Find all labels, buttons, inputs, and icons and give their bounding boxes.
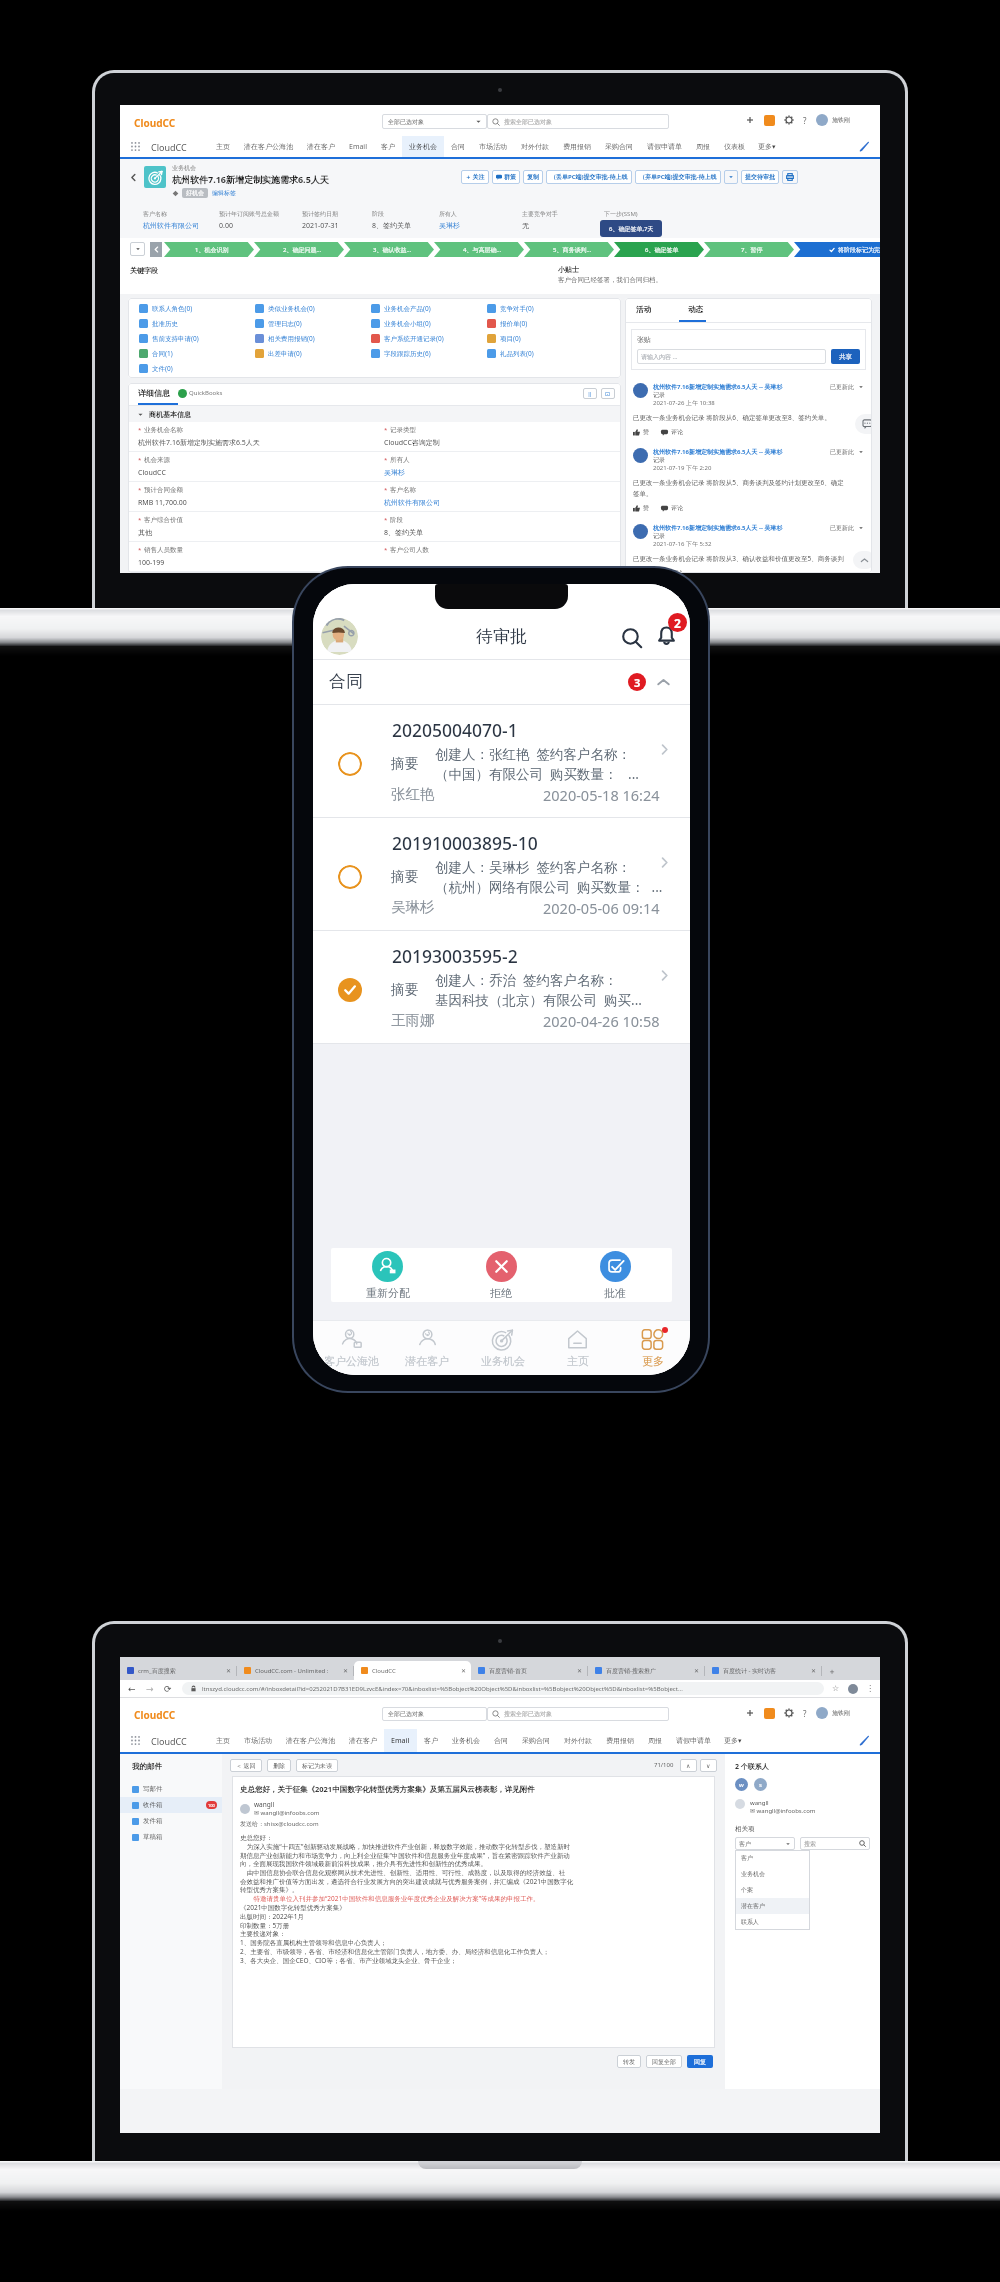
button[interactable]: 草稿箱 bbox=[120, 1829, 222, 1845]
button[interactable]: 费用报销 bbox=[599, 1729, 641, 1752]
button[interactable]: 对外付款 bbox=[557, 1729, 599, 1752]
button[interactable]: 活动 bbox=[633, 305, 654, 314]
button[interactable]: 潜在客户 bbox=[300, 136, 342, 157]
button[interactable]: 礼品列表(0) bbox=[487, 349, 534, 358]
button[interactable]: Search bbox=[616, 622, 648, 654]
button[interactable]: 收件箱 bbox=[120, 1797, 222, 1813]
button[interactable]: 请假申请单 bbox=[669, 1729, 718, 1752]
button[interactable]: 主页 bbox=[540, 1321, 615, 1375]
button[interactable]: 1、机会识别 bbox=[164, 242, 254, 257]
button[interactable]: 合同 bbox=[487, 1729, 515, 1752]
button[interactable]: CloudCC bbox=[354, 1661, 471, 1680]
button[interactable]: 主页 bbox=[209, 1729, 237, 1752]
button[interactable]: ∨ bbox=[700, 1759, 717, 1772]
button[interactable]: 复制 bbox=[523, 170, 543, 184]
button[interactable]: 采购合同 bbox=[515, 1729, 557, 1752]
button[interactable]: 市场活动 bbox=[237, 1729, 279, 1752]
button[interactable]: 更多 bbox=[615, 1321, 690, 1375]
button[interactable]: 百度营销-首页 bbox=[471, 1661, 588, 1680]
button[interactable]: 将阶段标记为完成 bbox=[794, 242, 880, 257]
button[interactable]: 主页 bbox=[209, 136, 237, 157]
button[interactable]: 费用报销 bbox=[556, 136, 598, 157]
button[interactable]: Profile bbox=[321, 618, 358, 655]
button[interactable]: 市场活动 bbox=[472, 136, 514, 157]
button[interactable]: Print bbox=[782, 170, 798, 184]
button[interactable]: 周报 bbox=[641, 1729, 669, 1752]
button[interactable]: 业务机会产品(0) bbox=[371, 304, 431, 313]
button[interactable]: 潜在客户公海池 bbox=[279, 1729, 342, 1752]
button[interactable]: 写邮件 bbox=[120, 1781, 222, 1797]
button[interactable]: 更多▾ bbox=[718, 1729, 748, 1752]
button[interactable]: 5、商务谈判... bbox=[524, 242, 614, 257]
button[interactable]: 潜在客户 bbox=[342, 1729, 384, 1752]
button[interactable]: 客户 bbox=[735, 1850, 810, 1866]
button[interactable]: 业务机会小组(0) bbox=[371, 319, 431, 328]
button[interactable]: 拒绝 bbox=[444, 1248, 558, 1302]
button[interactable]: 共享 bbox=[831, 349, 860, 364]
button[interactable]: 群策 bbox=[492, 170, 520, 184]
button[interactable]: 报价单(0) bbox=[487, 319, 528, 328]
button[interactable]: 类似业务机会(0) bbox=[255, 304, 315, 313]
button[interactable]: Email bbox=[342, 136, 374, 157]
button[interactable]: （弃单PC端)提交审批-待上线 bbox=[635, 170, 721, 184]
button[interactable]: 客户系统开通记录(0) bbox=[371, 334, 444, 343]
button[interactable]: 潜在客户 bbox=[735, 1898, 810, 1914]
button[interactable]: 文件(0) bbox=[139, 364, 173, 373]
button[interactable]: 业务机会 bbox=[735, 1866, 810, 1882]
button[interactable]: 回复全部 bbox=[646, 2055, 682, 2068]
button[interactable]: 合同 bbox=[313, 660, 690, 704]
button[interactable]: 管理日志(0) bbox=[255, 319, 302, 328]
button[interactable]: 6、确定签单 bbox=[614, 242, 704, 257]
button[interactable]: 客户公海池 bbox=[313, 1321, 389, 1375]
button[interactable]: 7、暂停 bbox=[704, 242, 794, 257]
button[interactable]: CloudCC.com - Unlimited : bbox=[237, 1661, 354, 1680]
button[interactable]: 2、确定问题... bbox=[254, 242, 344, 257]
button[interactable]: More actions bbox=[724, 170, 738, 184]
button[interactable]: 20193003595-2 bbox=[313, 931, 690, 1043]
button[interactable]: Scroll to top bbox=[853, 551, 872, 569]
button[interactable]: 联系人 bbox=[735, 1914, 810, 1930]
button[interactable]: 字段跟踪历史(6) bbox=[371, 349, 431, 358]
button[interactable]: 潜在客户公海池 bbox=[237, 136, 300, 157]
button[interactable]: 重新分配 bbox=[331, 1248, 444, 1302]
button[interactable]: 3、确认收益... bbox=[344, 242, 434, 257]
button[interactable]: 相关费用报销(0) bbox=[255, 334, 315, 343]
button[interactable]: 采购合同 bbox=[598, 136, 640, 157]
button[interactable]: 百度统计 - 实时访客 bbox=[705, 1661, 822, 1680]
button[interactable]: 竞争对手(0) bbox=[487, 304, 534, 313]
button[interactable]: 删除 bbox=[267, 1759, 291, 1772]
button[interactable]: 仪表板 bbox=[717, 136, 752, 157]
button[interactable]: 项目(0) bbox=[487, 334, 521, 343]
button[interactable]: 对外付款 bbox=[514, 136, 556, 157]
button[interactable]: 转发 bbox=[617, 2055, 641, 2068]
button[interactable]: 潜在客户 bbox=[389, 1321, 465, 1375]
button[interactable]: 批准 bbox=[558, 1248, 672, 1302]
button[interactable]: 回复 bbox=[687, 2055, 713, 2068]
button[interactable]: 更多▾ bbox=[752, 136, 782, 157]
button[interactable]: 发件箱 bbox=[120, 1813, 222, 1829]
button[interactable]: 周报 bbox=[689, 136, 717, 157]
button[interactable]: 合同 bbox=[444, 136, 472, 157]
button[interactable]: 售前支持申请(0) bbox=[139, 334, 199, 343]
button[interactable]: Notifications bbox=[650, 620, 682, 652]
button[interactable]: 合同(1) bbox=[139, 349, 173, 358]
button[interactable]: 个案 bbox=[735, 1882, 810, 1898]
button[interactable]: 出差申请(0) bbox=[255, 349, 302, 358]
button[interactable]: 业务机会 bbox=[445, 1729, 487, 1752]
button[interactable]: 请假申请单 bbox=[640, 136, 689, 157]
button[interactable]: 4、与高层确... bbox=[434, 242, 524, 257]
button[interactable]: ＋ 关注 bbox=[461, 170, 489, 184]
button[interactable]: Email bbox=[384, 1729, 417, 1752]
button[interactable]: 联系人角色(0) bbox=[139, 304, 193, 313]
button[interactable]: （丢单PC端)提交审批-待上线 bbox=[546, 170, 632, 184]
button[interactable]: 业务机会 bbox=[465, 1321, 540, 1375]
button[interactable]: 客户 bbox=[374, 136, 402, 157]
button[interactable]: 提交待审批 bbox=[741, 170, 779, 184]
button[interactable]: 标记为未读 bbox=[296, 1759, 338, 1772]
button[interactable]: 客户 bbox=[417, 1729, 445, 1752]
button[interactable]: 动态 bbox=[685, 305, 706, 314]
button[interactable]: 20205004070-1 bbox=[313, 705, 690, 817]
button[interactable]: ＜ 返回 bbox=[230, 1759, 262, 1772]
button[interactable]: crm_百度搜索 bbox=[120, 1661, 237, 1680]
button[interactable]: ∧ bbox=[680, 1759, 697, 1772]
